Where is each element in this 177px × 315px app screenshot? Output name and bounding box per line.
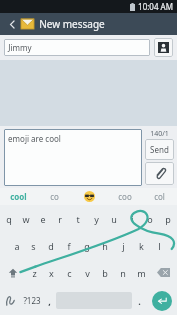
staticText: r [58, 213, 62, 225]
button[interactable]: Shift [0, 259, 26, 286]
button[interactable]: Backspace [150, 259, 177, 286]
button[interactable]: Jimmy [4, 39, 150, 56]
staticText: i [131, 213, 134, 225]
staticText: x [49, 267, 54, 279]
staticText: emoji are cool [8, 133, 61, 144]
staticText: h [102, 240, 108, 252]
button[interactable]: co [36, 188, 72, 205]
staticText: g [84, 240, 90, 252]
staticText: o [147, 213, 153, 225]
button[interactable]: coo [107, 188, 142, 205]
staticText: p [165, 213, 171, 225]
staticText: Jimmy [8, 42, 32, 53]
button[interactable]: w [17, 205, 34, 232]
button[interactable]: o [141, 205, 159, 232]
staticText: New message [39, 17, 105, 31]
staticText: , [48, 295, 51, 307]
button[interactable]: . [132, 286, 147, 315]
staticText: s [31, 240, 36, 252]
staticText: z [32, 267, 37, 279]
staticText: q [6, 213, 12, 225]
staticText: f [67, 240, 71, 252]
staticText: u [111, 213, 117, 225]
button[interactable]: e [34, 205, 51, 232]
button[interactable]: emoji are cool [4, 129, 142, 186]
button[interactable]: Back [5, 17, 19, 31]
button[interactable]: ?123 [20, 286, 43, 315]
staticText: n [120, 267, 126, 279]
button[interactable]: Handwriting input [0, 286, 20, 315]
button[interactable]: x [43, 259, 60, 286]
button[interactable]: cool [0, 188, 36, 205]
button[interactable]: z [26, 259, 43, 286]
staticText: y [94, 213, 99, 225]
staticText: c [67, 267, 72, 279]
button[interactable]: l [150, 232, 168, 259]
button[interactable]: g [78, 232, 96, 259]
staticText: cool [10, 191, 27, 202]
button[interactable]: d [42, 232, 60, 259]
staticText: w [22, 213, 30, 225]
button[interactable]: col [142, 188, 177, 205]
button[interactable]: r [51, 205, 69, 232]
button[interactable]: n [114, 259, 132, 286]
button[interactable]: f [60, 232, 78, 259]
staticText: 140/1 [150, 129, 169, 139]
button[interactable]: b [96, 259, 114, 286]
staticText: t [76, 213, 80, 225]
button[interactable]: Enter [152, 291, 172, 311]
staticText: k [139, 240, 144, 252]
button[interactable]: s [25, 232, 42, 259]
staticText: col [154, 191, 165, 202]
button[interactable]: k [132, 232, 150, 259]
staticText: j [122, 240, 125, 252]
button[interactable]: v [78, 259, 96, 286]
staticText: 10:04 AM [138, 1, 173, 12]
staticText: m [137, 267, 146, 279]
staticText: a [14, 240, 20, 252]
button[interactable]: m [132, 259, 150, 286]
button[interactable]: Attach [145, 162, 174, 185]
staticText: v [85, 267, 90, 279]
button[interactable]: c [60, 259, 78, 286]
button[interactable]: Send [145, 139, 174, 160]
button[interactable]: j [114, 232, 132, 259]
button[interactable]: h [96, 232, 114, 259]
staticText: d [48, 240, 54, 252]
staticText: . [138, 295, 141, 307]
button[interactable]: Emoji suggestion [72, 188, 107, 205]
button[interactable]: y [87, 205, 105, 232]
button[interactable]: Choose contact [154, 38, 173, 57]
button[interactable]: , [43, 286, 56, 315]
button[interactable]: u [105, 205, 123, 232]
staticText: b [102, 267, 108, 279]
button[interactable]: t [69, 205, 87, 232]
button[interactable]: q [0, 205, 17, 232]
staticText: e [40, 213, 46, 225]
button[interactable]: i [123, 205, 141, 232]
staticText: l [158, 240, 161, 252]
button[interactable]: p [159, 205, 177, 232]
button[interactable]: a [8, 232, 25, 259]
staticText: ?123 [23, 295, 41, 306]
staticText: coo [118, 191, 132, 202]
staticText: co [50, 191, 59, 202]
staticText: Send [150, 144, 169, 155]
